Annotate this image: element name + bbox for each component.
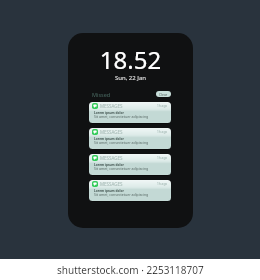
button[interactable]: Messages — [89, 102, 171, 123]
button[interactable]: Clear — [156, 91, 171, 97]
button[interactable]: Messages — [89, 128, 171, 149]
staticText: 1h ago — [157, 156, 168, 160]
other: Messages — [92, 155, 98, 161]
other: Messages — [92, 103, 98, 109]
staticText: Lorem ipsum dolor — [94, 189, 124, 193]
button[interactable]: Messages — [89, 154, 171, 175]
staticText: Lorem ipsum dolor — [94, 111, 124, 115]
staticText: 1h ago — [157, 182, 168, 186]
other: Messages — [92, 129, 98, 135]
staticText: Sit amet, consectetuer adipiscing — [94, 140, 149, 145]
staticText: Sit amet, consectetuer adipiscing — [94, 192, 149, 197]
staticText: shutterstock.com · 2253118707 — [57, 263, 204, 277]
button[interactable]: Missed — [92, 91, 111, 98]
staticText: MESSAGES — [100, 181, 123, 187]
staticText: Clear — [159, 92, 168, 97]
other: Messages — [92, 181, 98, 187]
staticText: MESSAGES — [100, 129, 123, 135]
staticText: Sit amet, consectetuer adipiscing — [94, 166, 149, 171]
staticText: Sit amet, consectetuer adipiscing — [94, 114, 149, 119]
staticText: MESSAGES — [100, 155, 123, 161]
staticText: Lorem ipsum dolor — [94, 137, 124, 141]
staticText: 1h ago — [157, 104, 168, 108]
staticText: MESSAGES — [100, 103, 123, 109]
button[interactable]: Messages — [89, 180, 171, 201]
staticText: Sun, 22 Jan — [68, 74, 193, 82]
staticText: 18.52 — [68, 43, 193, 76]
staticText: 1h ago — [157, 130, 168, 134]
staticText: Lorem ipsum dolor — [94, 163, 124, 167]
